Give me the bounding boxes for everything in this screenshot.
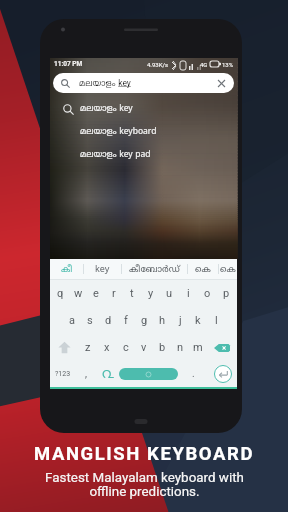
staticText: j [179,314,182,327]
staticText: ?123 [55,370,71,378]
button[interactable]: y [141,280,160,307]
staticText: v [141,341,147,354]
button[interactable]: q [51,280,69,307]
staticText: key [95,264,110,275]
staticText: d [105,314,112,327]
staticText: മലയാളം key [79,78,131,89]
button[interactable]: Backspace [207,334,237,361]
button[interactable]: k [189,307,207,334]
staticText: മലയാളം key [80,104,133,115]
staticText: o [204,287,211,300]
staticText: y [148,287,154,300]
button[interactable]: t [123,280,141,307]
button[interactable]: e [87,280,105,307]
staticText: കെ [220,264,236,275]
button[interactable]: g [135,307,153,334]
staticText: മലയാളം keyboard [80,127,157,138]
button[interactable]: , [75,361,97,387]
button[interactable]: കീബോർഡ് [122,259,187,279]
staticText: u [166,287,173,300]
button[interactable]: . [178,361,208,387]
staticText: MANGLISH KEYBOARD [34,443,254,465]
button[interactable]: മലയാളം key pad [50,144,237,167]
staticText: കെ [195,264,211,275]
staticText: w [74,287,83,300]
staticText: 11:07 PM [54,60,83,68]
button[interactable]: h [153,307,171,334]
staticText: e [93,287,99,300]
staticText: . [192,368,195,380]
button[interactable]: o [198,280,217,307]
button[interactable]: c [116,334,135,361]
staticText: 13% [222,61,234,68]
button[interactable]: Space [119,368,178,380]
staticText: , [85,368,87,380]
staticText: Fastest Malayalam keyboard with offline … [45,470,244,500]
button[interactable]: key [84,259,121,279]
staticText: n [177,341,184,354]
button[interactable]: m [189,334,207,361]
button[interactable]: മലയാളം key [53,73,234,93]
staticText: f [124,314,128,327]
button[interactable]: x [97,334,116,361]
staticText: b [159,341,166,354]
button[interactable]: l [207,307,225,334]
button[interactable]: കീ [50,259,83,279]
staticText: m [193,341,203,354]
button[interactable]: കെ [188,259,218,279]
button[interactable]: j [171,307,189,334]
staticText: 4G [200,61,208,68]
button[interactable]: b [153,334,171,361]
button[interactable]: s [81,307,99,334]
button[interactable]: d [99,307,117,334]
staticText: ൨ [102,366,115,383]
button[interactable]: f [117,307,135,334]
staticText: z [85,341,91,354]
button[interactable]: r [105,280,123,307]
staticText: 4.93K/s [147,61,169,68]
staticText: i [187,287,190,300]
button[interactable]: z [78,334,97,361]
button[interactable]: u [160,280,179,307]
button[interactable]: n [171,334,189,361]
staticText: x [104,341,110,354]
button[interactable]: a [62,307,81,334]
button[interactable]: Symbols [50,361,75,387]
button[interactable]: മലയാളം key [50,98,237,121]
staticText: കീ [61,264,73,275]
staticText: l [215,314,218,327]
staticText: h [159,314,166,327]
staticText: g [141,314,148,327]
staticText: k [195,314,201,327]
button[interactable]: മലയാളം keyboard [50,121,237,144]
staticText: q [57,287,64,300]
button[interactable]: Enter [208,361,237,387]
staticText: c [123,341,129,354]
button[interactable]: Shift [50,334,78,361]
button[interactable]: Clear search [216,78,227,89]
button[interactable]: കെ [219,259,237,279]
staticText: a [69,314,75,327]
staticText: t [130,287,134,300]
button[interactable]: Switch language [97,361,119,387]
staticText: മലയാളം key pad [80,150,151,161]
button[interactable]: p [217,280,236,307]
staticText: r [112,287,116,300]
button[interactable]: i [179,280,198,307]
staticText: p [223,287,230,300]
staticText: കീബോർഡ് [129,264,180,275]
button[interactable]: v [135,334,153,361]
button[interactable]: w [69,280,87,307]
staticText: s [87,314,93,327]
